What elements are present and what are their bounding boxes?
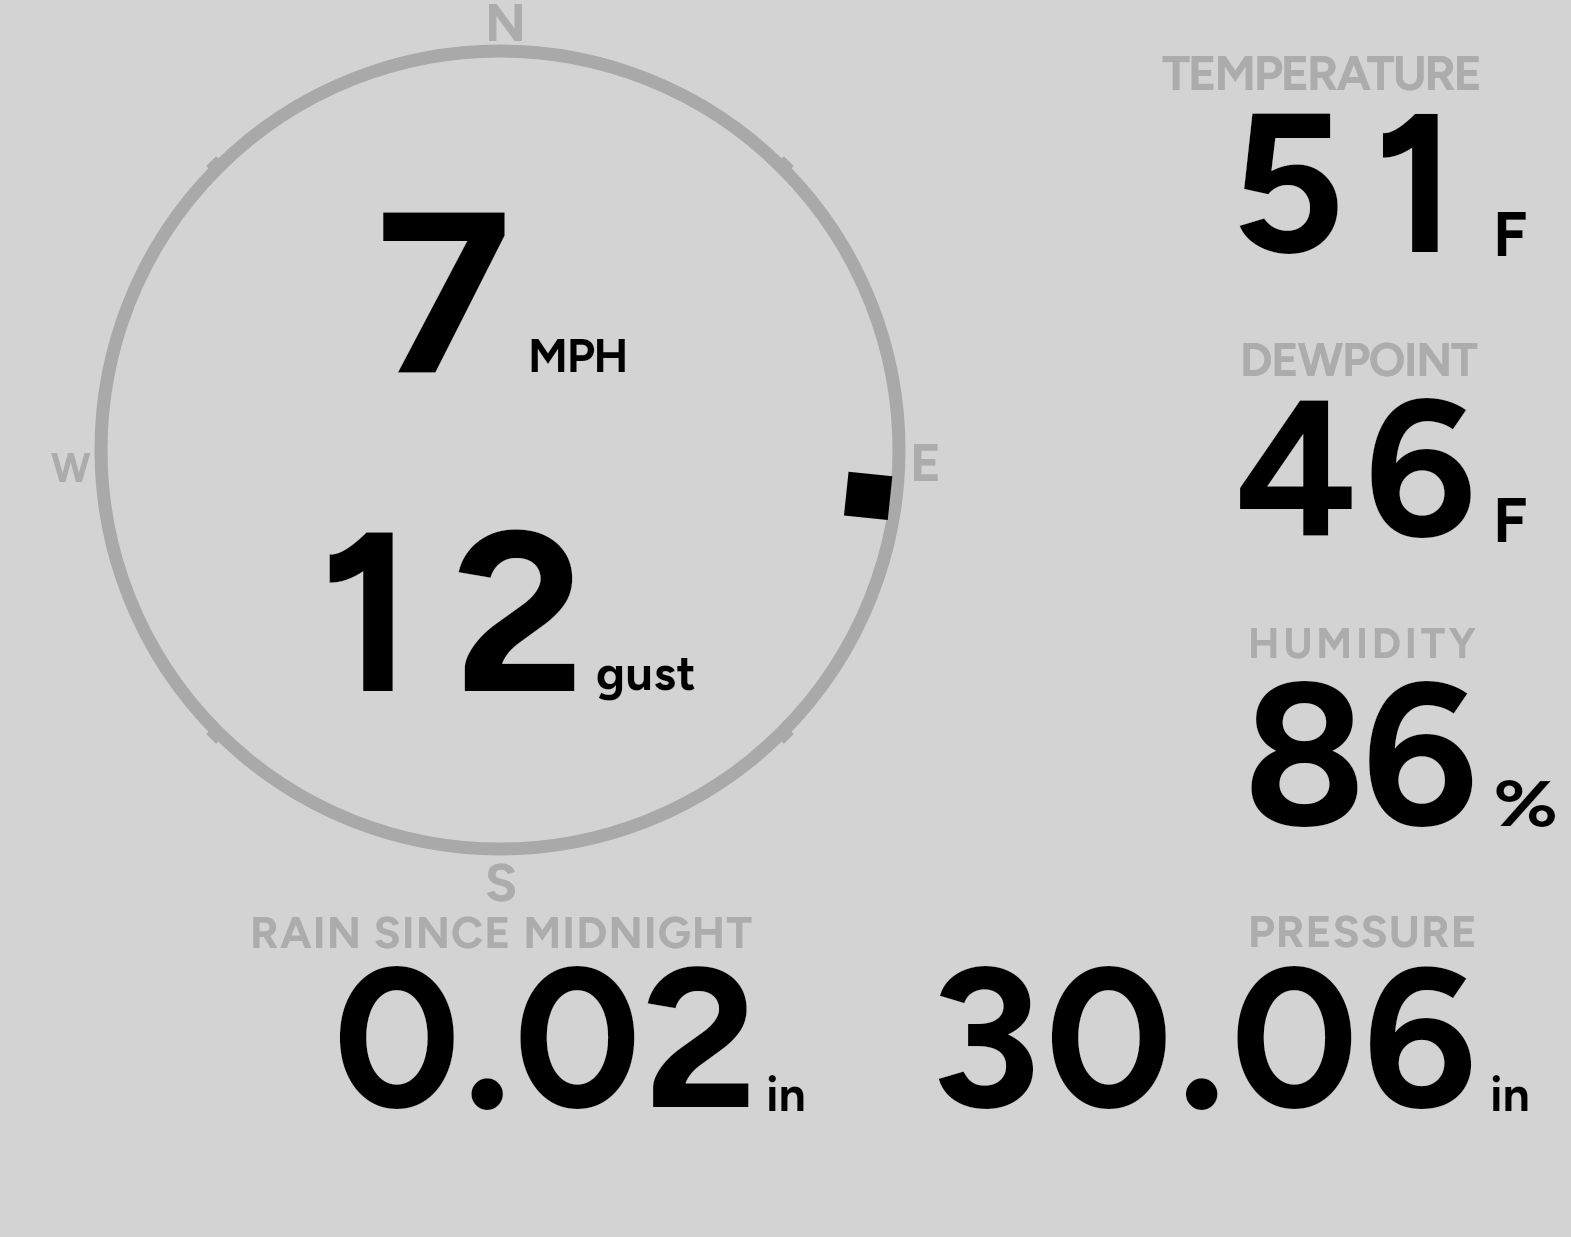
- button[interactable]: Temperature 51 degrees Fahrenheit: [1140, 40, 1571, 320]
- staticText: PRESSURE: [1248, 905, 1479, 958]
- staticText: 46: [1235, 352, 1484, 584]
- staticText: 12: [319, 476, 624, 747]
- staticText: TEMPERATURE: [1162, 44, 1480, 102]
- staticText: 7: [375, 155, 512, 429]
- staticText: 0.02: [333, 920, 760, 1156]
- staticText: W: [51, 444, 91, 492]
- button[interactable]: Pressure 30.06 inches: [860, 898, 1571, 1128]
- button[interactable]: Rain since midnight 0.02 inches: [220, 898, 820, 1128]
- staticText: 51: [1231, 65, 1486, 301]
- button[interactable]: Humidity 86 percent: [1140, 612, 1571, 892]
- button[interactable]: Wind direction compass, 7 miles per hour: [94, 44, 906, 856]
- staticText: in: [1490, 1065, 1530, 1123]
- staticText: 86: [1243, 634, 1474, 875]
- staticText: gust: [596, 644, 697, 702]
- button[interactable]: Dewpoint 46 degrees Fahrenheit: [1140, 326, 1571, 606]
- staticText: HUMIDITY: [1248, 618, 1480, 668]
- staticText: S: [485, 851, 518, 914]
- staticText: DEWPOINT: [1240, 332, 1477, 388]
- staticText: RAIN SINCE MIDNIGHT: [250, 906, 754, 959]
- staticText: F: [1493, 483, 1528, 558]
- staticText: %: [1493, 766, 1559, 842]
- staticText: 30.06: [931, 920, 1482, 1156]
- staticText: E: [910, 431, 942, 494]
- staticText: MPH: [528, 328, 628, 384]
- staticText: N: [485, 0, 526, 54]
- staticText: in: [766, 1065, 806, 1123]
- staticText: F: [1493, 197, 1528, 272]
